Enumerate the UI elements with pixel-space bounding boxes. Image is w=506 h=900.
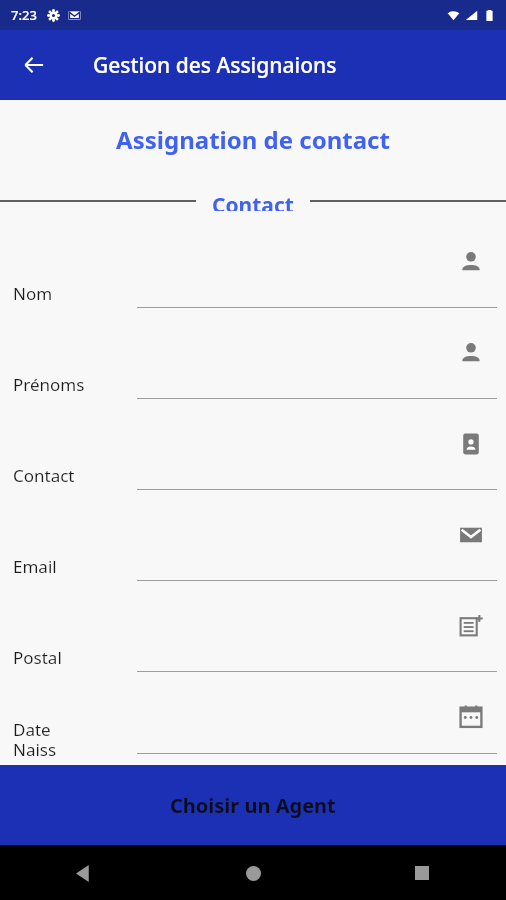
staticText: Contact [13,464,75,487]
button[interactable]: Back [10,41,58,89]
button[interactable]: Nom [0,237,506,328]
button[interactable]: Date Naiss [0,692,506,765]
button[interactable]: Postal [0,601,506,692]
staticText: Nom [13,282,53,305]
staticText: Postal [13,646,62,669]
staticText: Assignation de contact [0,123,506,156]
staticText: Date Naiss [13,718,57,761]
button[interactable]: Prénoms [0,328,506,419]
button[interactable]: Home [229,849,277,897]
button[interactable]: Email [0,510,506,601]
button[interactable]: Recent apps [398,849,446,897]
staticText: Contact [212,191,294,211]
staticText: Email [13,555,57,578]
staticText: Gestion des Assignaions [93,51,337,80]
staticText: 7:23 [11,6,37,24]
button[interactable]: Choisir un Agent [0,765,506,845]
staticText: Choisir un Agent [170,792,336,819]
button[interactable]: Contact [0,419,506,510]
button[interactable]: Back [60,849,108,897]
staticText: Prénoms [13,373,85,396]
